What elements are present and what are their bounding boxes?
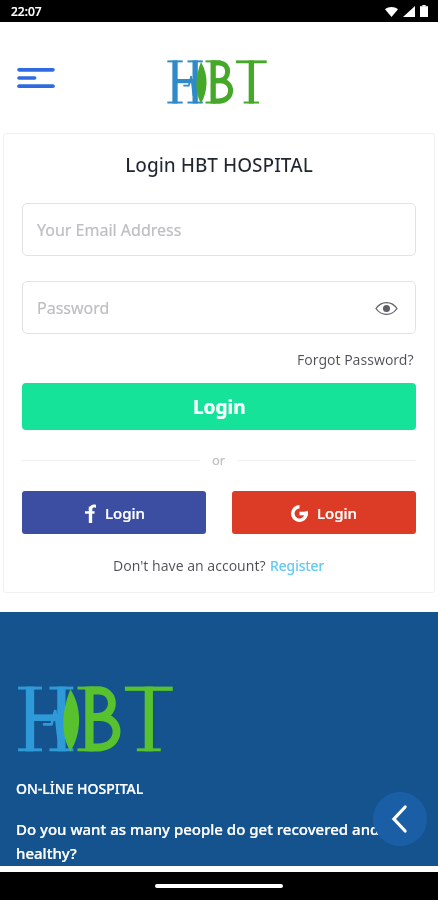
staticText: Do you want as many people do get recove… bbox=[16, 819, 422, 863]
button[interactable]: Register bbox=[270, 556, 325, 575]
button[interactable]: Your Email Address bbox=[22, 203, 416, 256]
staticText: Your Email Address bbox=[37, 219, 182, 241]
staticText: Password bbox=[37, 297, 110, 319]
button[interactable]: Login bbox=[232, 491, 416, 534]
staticText: Don't have an account? bbox=[113, 556, 270, 575]
staticText: Forgot Password? bbox=[297, 350, 414, 369]
button[interactable]: Login bbox=[22, 383, 416, 430]
staticText: Login bbox=[105, 503, 145, 523]
button[interactable]: Forgot Password? bbox=[295, 348, 416, 371]
staticText: or bbox=[212, 451, 226, 469]
staticText: Login bbox=[193, 394, 246, 420]
staticText: Register bbox=[270, 556, 325, 575]
staticText: Login HBT HOSPITAL bbox=[125, 152, 313, 178]
button[interactable]: Open navigation menu bbox=[12, 54, 60, 102]
button[interactable]: Back bbox=[373, 792, 427, 846]
button[interactable]: Password bbox=[22, 281, 416, 334]
staticText: ON-LİNE HOSPITAL bbox=[16, 779, 144, 798]
staticText: 22:07 bbox=[11, 3, 42, 19]
button[interactable]: Login bbox=[22, 491, 206, 534]
button[interactable]: Show password bbox=[371, 293, 401, 323]
staticText: Login bbox=[317, 503, 357, 523]
